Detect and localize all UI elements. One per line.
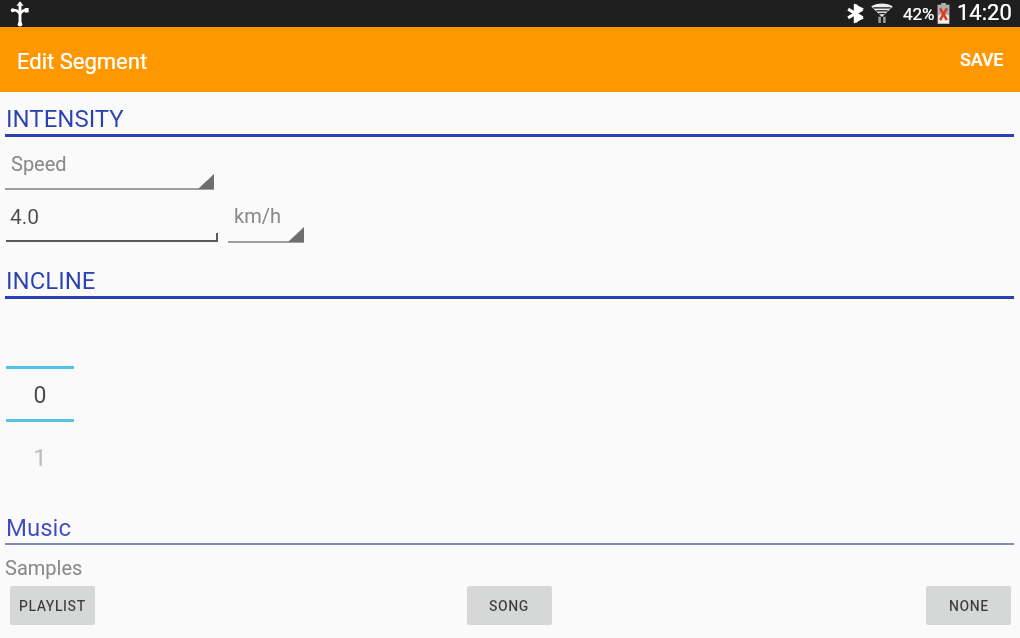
staticText: NONE (949, 598, 989, 614)
staticText: 4.0 (10, 205, 40, 230)
staticText: Speed (11, 152, 67, 175)
staticText: 42% (903, 4, 935, 24)
button[interactable]: NONE (926, 586, 1011, 625)
staticText: INTENSITY (6, 105, 124, 133)
staticText: Samples (5, 556, 83, 579)
staticText: 14:20 (957, 0, 1012, 26)
staticText: PLAYLIST (19, 598, 86, 614)
button[interactable]: SONG (467, 586, 552, 625)
button[interactable]: Speed (5, 146, 214, 195)
staticText: SAVE (960, 49, 1004, 70)
staticText: 0 (6, 382, 74, 409)
staticText: INCLINE (6, 267, 96, 295)
staticText: 1 (6, 445, 74, 472)
other: USB connected (11, 1, 29, 26)
button[interactable]: 4.0 (5, 205, 218, 243)
staticText: SONG (489, 598, 530, 614)
button[interactable]: PLAYLIST (10, 586, 95, 625)
staticText: Edit Segment (17, 49, 148, 75)
button[interactable]: km/h (228, 198, 304, 248)
staticText: Music (6, 514, 71, 542)
button[interactable]: SAVE (942, 27, 1020, 92)
staticText: km/h (234, 204, 281, 227)
button[interactable]: Incline value (6, 360, 74, 480)
